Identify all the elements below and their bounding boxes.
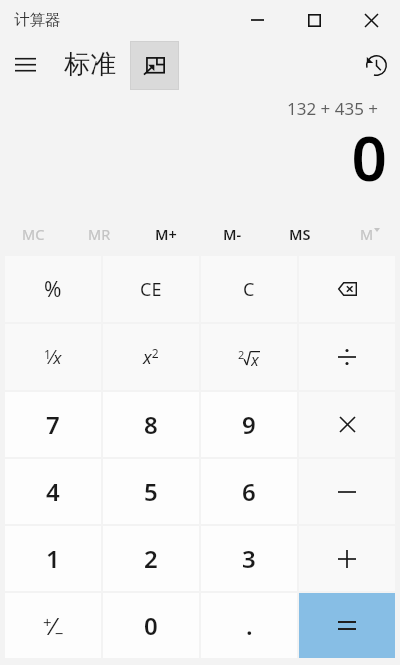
button[interactable]: One: [5, 526, 101, 591]
staticText: 1: [46, 542, 60, 575]
staticText: +⁄−: [43, 609, 64, 643]
button[interactable]: History: [352, 41, 400, 89]
button[interactable]: Square root of x: [201, 324, 297, 390]
button[interactable]: Menu: [3, 42, 47, 86]
button[interactable]: MR: [66, 0, 132, 255]
button[interactable]: Close: [348, 0, 394, 38]
button[interactable]: Five: [103, 459, 199, 524]
staticText: 标准: [64, 48, 116, 81]
staticText: 2: [238, 347, 245, 362]
button[interactable]: Four: [5, 459, 101, 524]
button[interactable]: x squared: [103, 324, 199, 390]
button[interactable]: Two: [103, 526, 199, 591]
button[interactable]: Backspace: [299, 256, 395, 322]
staticText: MR: [88, 224, 111, 244]
button[interactable]: MC: [0, 0, 66, 255]
button[interactable]: Minimize: [234, 0, 280, 38]
button[interactable]: Six: [201, 459, 297, 524]
staticText: x: [251, 349, 259, 367]
staticText: 7: [46, 408, 60, 441]
button[interactable]: MS: [266, 0, 333, 255]
button[interactable]: Keep on top: [130, 41, 179, 90]
staticText: 6: [242, 475, 256, 508]
button[interactable]: Clear entry: [103, 256, 199, 322]
staticText: 132 + 435 +: [286, 97, 378, 120]
staticText: M+: [155, 224, 177, 244]
staticText: 1⁄x: [44, 344, 62, 370]
staticText: CE: [140, 277, 162, 302]
button[interactable]: Percent: [5, 256, 101, 322]
button[interactable]: M˅: [333, 0, 400, 255]
button[interactable]: Equals: [299, 593, 395, 658]
staticText: M: [360, 224, 374, 244]
staticText: 0: [144, 609, 158, 642]
staticText: %: [44, 275, 62, 304]
button[interactable]: Maximize: [291, 0, 337, 38]
staticText: 9: [242, 408, 256, 441]
button[interactable]: Clear: [201, 256, 297, 322]
button[interactable]: Minus: [299, 459, 395, 524]
button[interactable]: Plus: [299, 526, 395, 591]
button[interactable]: Seven: [5, 392, 101, 457]
staticText: 4: [46, 475, 60, 508]
button[interactable]: Multiply: [299, 392, 395, 457]
button[interactable]: Positive negative: [5, 593, 101, 658]
staticText: 5: [144, 475, 158, 508]
staticText: 8: [144, 408, 158, 441]
staticText: 0: [351, 115, 387, 199]
button[interactable]: M+: [132, 0, 199, 255]
staticText: x2: [143, 345, 159, 370]
staticText: C: [243, 277, 255, 302]
button[interactable]: Nine: [201, 392, 297, 457]
button[interactable]: One divided by x: [5, 324, 101, 390]
staticText: .: [246, 609, 253, 642]
staticText: MC: [22, 224, 45, 244]
staticText: M-: [223, 224, 242, 244]
staticText: 计算器: [14, 10, 61, 30]
button[interactable]: Three: [201, 526, 297, 591]
button[interactable]: Divide: [299, 324, 395, 390]
staticText: 2: [144, 542, 158, 575]
staticText: 3: [242, 542, 256, 575]
button[interactable]: Decimal separator: [201, 593, 297, 658]
button[interactable]: Eight: [103, 392, 199, 457]
button[interactable]: Zero: [103, 593, 199, 658]
button[interactable]: M-: [199, 0, 266, 255]
staticText: MS: [289, 224, 311, 244]
